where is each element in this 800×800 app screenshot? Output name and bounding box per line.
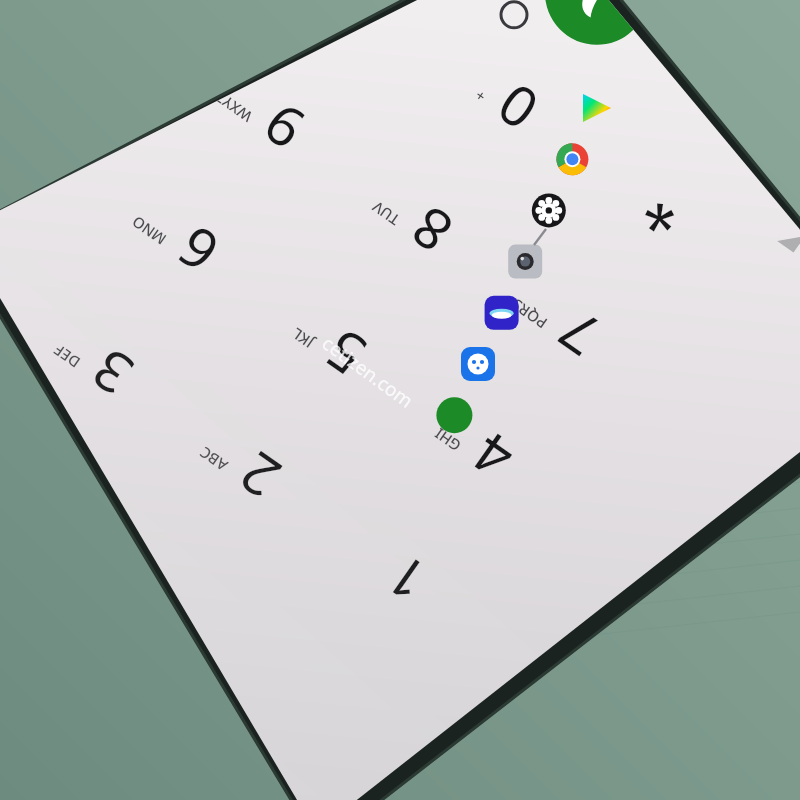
button[interactable]: Phone dialer keypad on foldable device [0,0,800,800]
